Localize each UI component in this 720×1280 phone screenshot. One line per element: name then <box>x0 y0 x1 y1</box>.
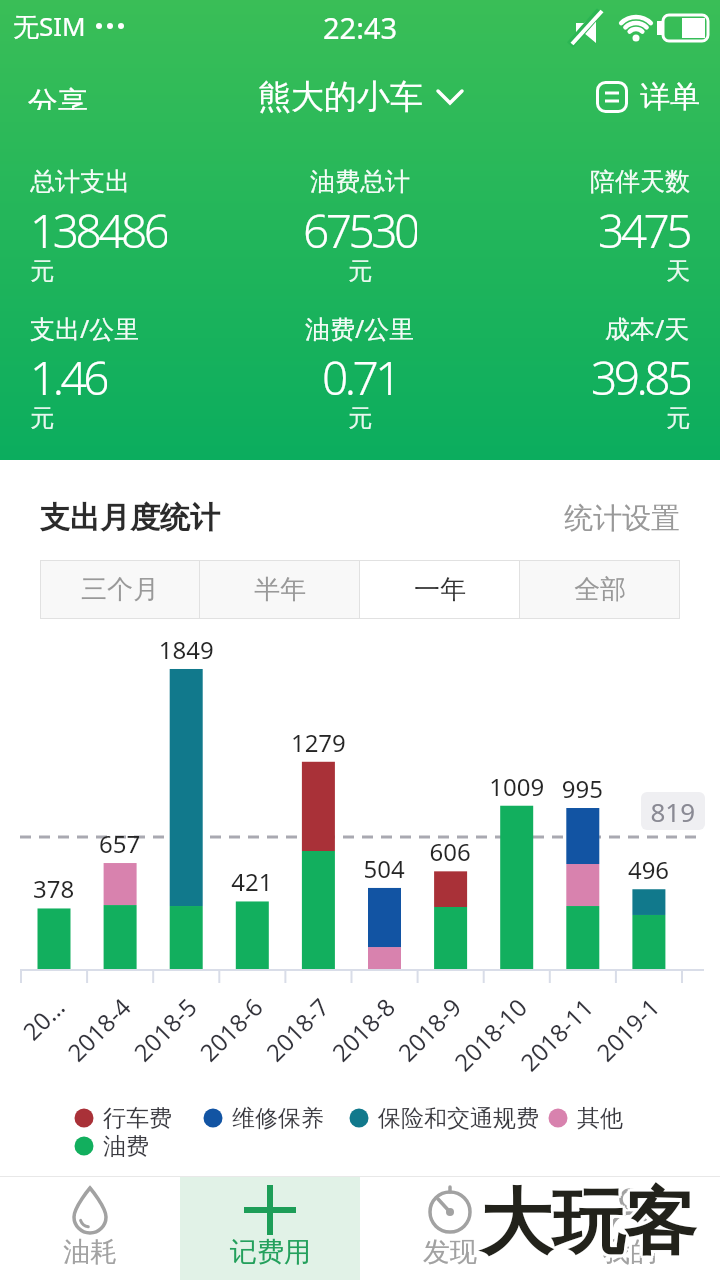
staticText: 支出月度统计 <box>40 499 220 537</box>
staticText: 1.46 <box>30 346 107 398</box>
staticText: 大玩客 <box>478 1180 694 1271</box>
staticText: 天 <box>666 256 690 286</box>
button[interactable]: 记费用 <box>180 1177 360 1280</box>
staticText: 大玩客 <box>480 1178 696 1269</box>
staticText: 油费总计 <box>310 166 410 197</box>
button[interactable]: 油耗 <box>0 1177 180 1280</box>
staticText: 67530 <box>303 199 417 251</box>
staticText: 成本/天 <box>605 311 690 345</box>
staticText: 元 <box>348 403 372 433</box>
staticText: 22:43 <box>323 8 398 44</box>
staticText: 元 <box>666 403 690 433</box>
staticText: 39.85 <box>591 346 690 398</box>
button[interactable]: 详单 <box>596 78 700 116</box>
staticText: 油费/公里 <box>305 311 415 345</box>
staticText: 大玩客 <box>477 1178 693 1269</box>
staticText: 我的 <box>603 1235 657 1269</box>
staticText: 元 <box>30 256 54 286</box>
staticText: 元 <box>30 403 54 433</box>
staticText: 总计支出 <box>30 166 130 197</box>
button[interactable]: 半年 <box>200 561 359 618</box>
button[interactable]: 三个月 <box>41 561 199 618</box>
staticText: 大玩客 <box>480 1175 696 1266</box>
staticText: 大玩客 <box>482 1180 698 1271</box>
staticText: 大玩客 <box>478 1176 694 1267</box>
staticText: 记费用 <box>230 1235 311 1269</box>
staticText: 0.71 <box>322 346 399 398</box>
staticText: 元 <box>348 256 372 286</box>
button[interactable]: 统计设置 <box>564 500 680 537</box>
staticText: 三个月 <box>81 573 159 606</box>
button[interactable]: 一年 <box>360 561 519 618</box>
staticText: 详单 <box>640 78 700 116</box>
staticText: 3475 <box>598 199 690 251</box>
button[interactable]: 发现 <box>360 1177 540 1280</box>
button[interactable]: 熊大的小车 <box>258 76 463 118</box>
staticText: 138486 <box>30 199 167 251</box>
staticText: 大玩客 <box>480 1181 696 1272</box>
button[interactable]: 分享 <box>18 74 98 120</box>
staticText: 发现 <box>423 1235 477 1269</box>
staticText: 半年 <box>254 573 306 606</box>
staticText: 统计设置 <box>564 500 680 537</box>
staticText: 无SIM <box>13 8 86 44</box>
staticText: 全部 <box>574 573 626 606</box>
staticText: 分享 <box>28 84 88 110</box>
staticText: 熊大的小车 <box>258 76 423 118</box>
staticText: 陪伴天数 <box>590 166 690 197</box>
staticText: 支出/公里 <box>30 311 140 345</box>
button[interactable]: 我的 <box>540 1177 720 1280</box>
staticText: 一年 <box>414 573 466 606</box>
staticText: 大玩客 <box>482 1176 698 1267</box>
staticText: 大玩客 <box>483 1178 699 1269</box>
button[interactable]: 全部 <box>520 561 679 618</box>
staticText: 油耗 <box>63 1235 117 1269</box>
